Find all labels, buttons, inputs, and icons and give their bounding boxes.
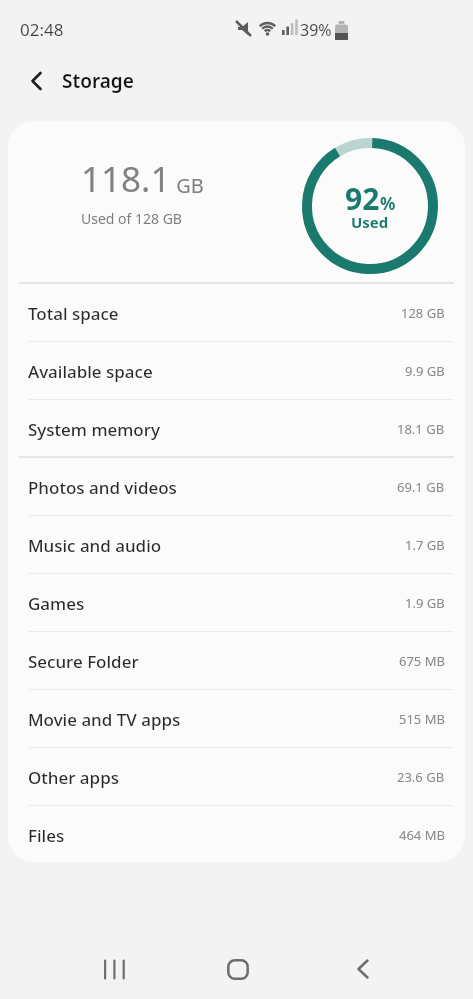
- staticText: Games: [28, 592, 85, 615]
- staticText: 1.7 GB: [405, 536, 445, 554]
- staticText: 515 MB: [399, 710, 445, 728]
- button[interactable]: [14, 58, 60, 104]
- button[interactable]: Photos and videos: [8, 458, 465, 516]
- button[interactable]: Games: [8, 574, 465, 632]
- staticText: 02:48: [20, 18, 64, 41]
- staticText: 118.1: [81, 155, 171, 203]
- staticText: Other apps: [28, 766, 119, 789]
- staticText: 464 MB: [399, 826, 445, 844]
- staticText: Photos and videos: [28, 476, 177, 499]
- staticText: 128 GB: [401, 304, 445, 322]
- staticText: %: [380, 192, 396, 215]
- staticText: 69.1 GB: [397, 478, 445, 496]
- staticText: Used of 128 GB: [81, 209, 182, 228]
- staticText: Secure Folder: [28, 650, 139, 673]
- button[interactable]: [90, 945, 138, 993]
- button[interactable]: Other apps: [8, 748, 465, 806]
- button[interactable]: Movie and TV apps: [8, 690, 465, 748]
- staticText: System memory: [28, 418, 160, 441]
- staticText: 39%: [300, 19, 332, 41]
- staticText: Files: [28, 824, 65, 847]
- button[interactable]: Total space: [8, 284, 465, 342]
- staticText: 92: [345, 178, 380, 219]
- button[interactable]: [339, 945, 387, 993]
- staticText: 18.1 GB: [397, 420, 445, 438]
- staticText: Total space: [28, 302, 119, 325]
- staticText: 1.9 GB: [405, 594, 445, 612]
- staticText: 23.6 GB: [397, 768, 445, 786]
- button[interactable]: Available space: [8, 342, 465, 400]
- staticText: Used: [351, 212, 389, 232]
- staticText: Storage: [62, 68, 134, 94]
- staticText: 675 MB: [399, 652, 445, 670]
- button[interactable]: Music and audio: [8, 516, 465, 574]
- staticText: GB: [171, 172, 204, 199]
- button[interactable]: [214, 945, 262, 993]
- button[interactable]: Secure Folder: [8, 632, 465, 690]
- button[interactable]: System memory: [8, 400, 465, 458]
- staticText: Music and audio: [28, 534, 162, 557]
- staticText: Available space: [28, 360, 153, 383]
- staticText: 9.9 GB: [405, 362, 445, 380]
- staticText: Movie and TV apps: [28, 708, 181, 731]
- button[interactable]: Files: [8, 806, 465, 862]
